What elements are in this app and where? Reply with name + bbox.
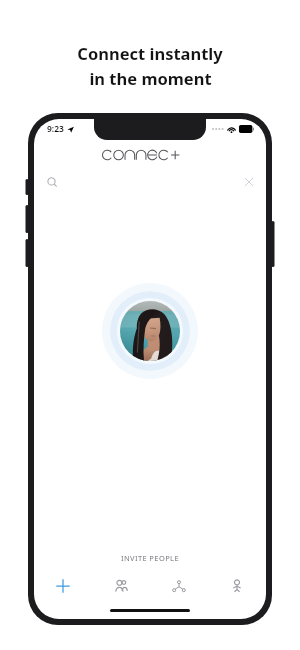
button[interactable]: Profile xyxy=(208,569,266,603)
staticText: in the moment xyxy=(89,67,212,89)
other: Search xyxy=(47,177,58,188)
staticText: 9:23 xyxy=(47,123,64,135)
button[interactable]: Profile photo xyxy=(102,283,198,379)
other: connec+ logo xyxy=(102,146,198,162)
button[interactable]: People xyxy=(92,569,150,603)
other: Clear xyxy=(245,178,253,186)
button[interactable]: Network xyxy=(150,569,208,603)
other: Profile photo xyxy=(120,301,180,361)
button[interactable]: Add xyxy=(34,569,92,603)
staticText: INVITE PEOPLE xyxy=(121,553,179,563)
button[interactable]: INVITE PEOPLE xyxy=(34,547,266,569)
button[interactable]: Search xyxy=(34,169,266,195)
staticText: Connect instantly xyxy=(77,42,223,64)
